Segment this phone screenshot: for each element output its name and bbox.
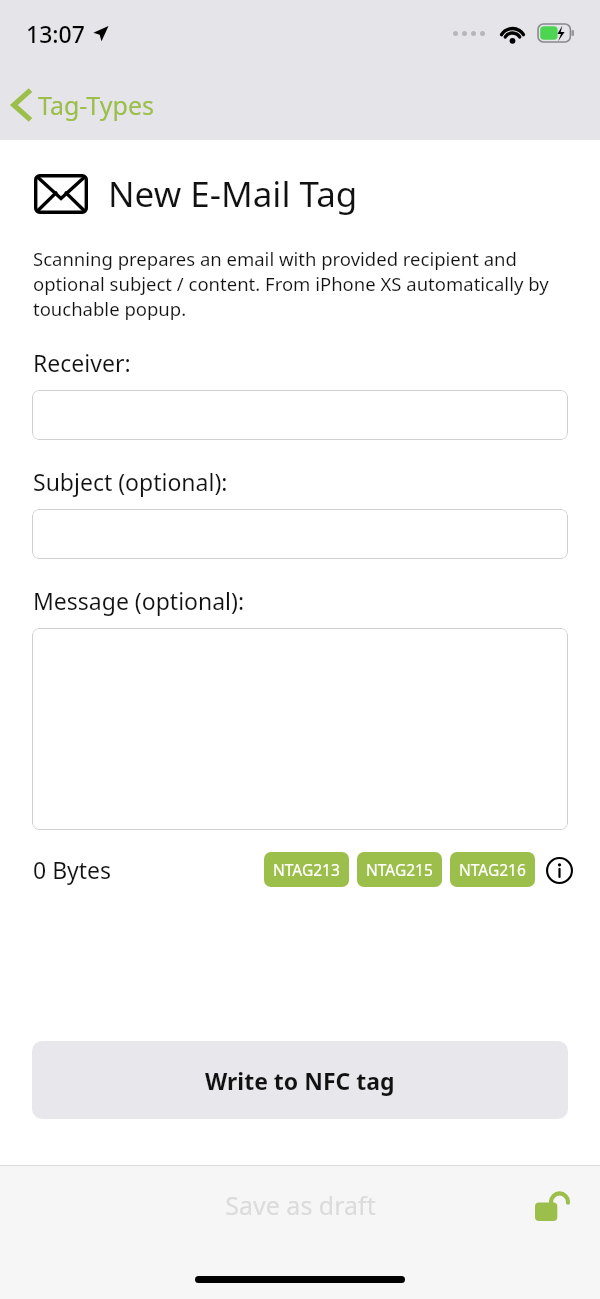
other: Battery charging xyxy=(538,24,574,42)
button[interactable] xyxy=(32,628,568,830)
staticText: 0 Bytes xyxy=(33,854,112,885)
staticText: Tag-Types xyxy=(38,88,154,122)
other: Wi-Fi xyxy=(499,24,526,43)
button[interactable]: NTAG213 xyxy=(264,852,349,887)
button[interactable]: Save as draft xyxy=(205,1182,396,1228)
staticText: NTAG215 xyxy=(366,859,433,880)
button[interactable]: NTAG215 xyxy=(357,852,442,887)
staticText: Message (optional): xyxy=(33,585,245,616)
staticText: NTAG213 xyxy=(273,859,340,880)
button[interactable]: Unlocked xyxy=(530,1178,576,1224)
button[interactable]: Tag-Types xyxy=(0,82,170,128)
button[interactable]: Write to NFC tag xyxy=(32,1041,568,1119)
staticText: Subject (optional): xyxy=(33,466,228,497)
button[interactable]: NTAG216 xyxy=(450,852,535,887)
staticText: Receiver: xyxy=(33,347,131,378)
button[interactable] xyxy=(32,390,568,440)
staticText: New E-Mail Tag xyxy=(108,170,358,218)
button[interactable] xyxy=(32,509,568,559)
staticText: NTAG216 xyxy=(459,859,526,880)
staticText: Save as draft xyxy=(225,1188,376,1222)
staticText: Scanning prepares an email with provided… xyxy=(33,246,560,321)
button[interactable]: Information xyxy=(544,855,574,885)
staticText: 13:07 xyxy=(26,18,85,49)
staticText: Write to NFC tag xyxy=(205,1065,395,1096)
